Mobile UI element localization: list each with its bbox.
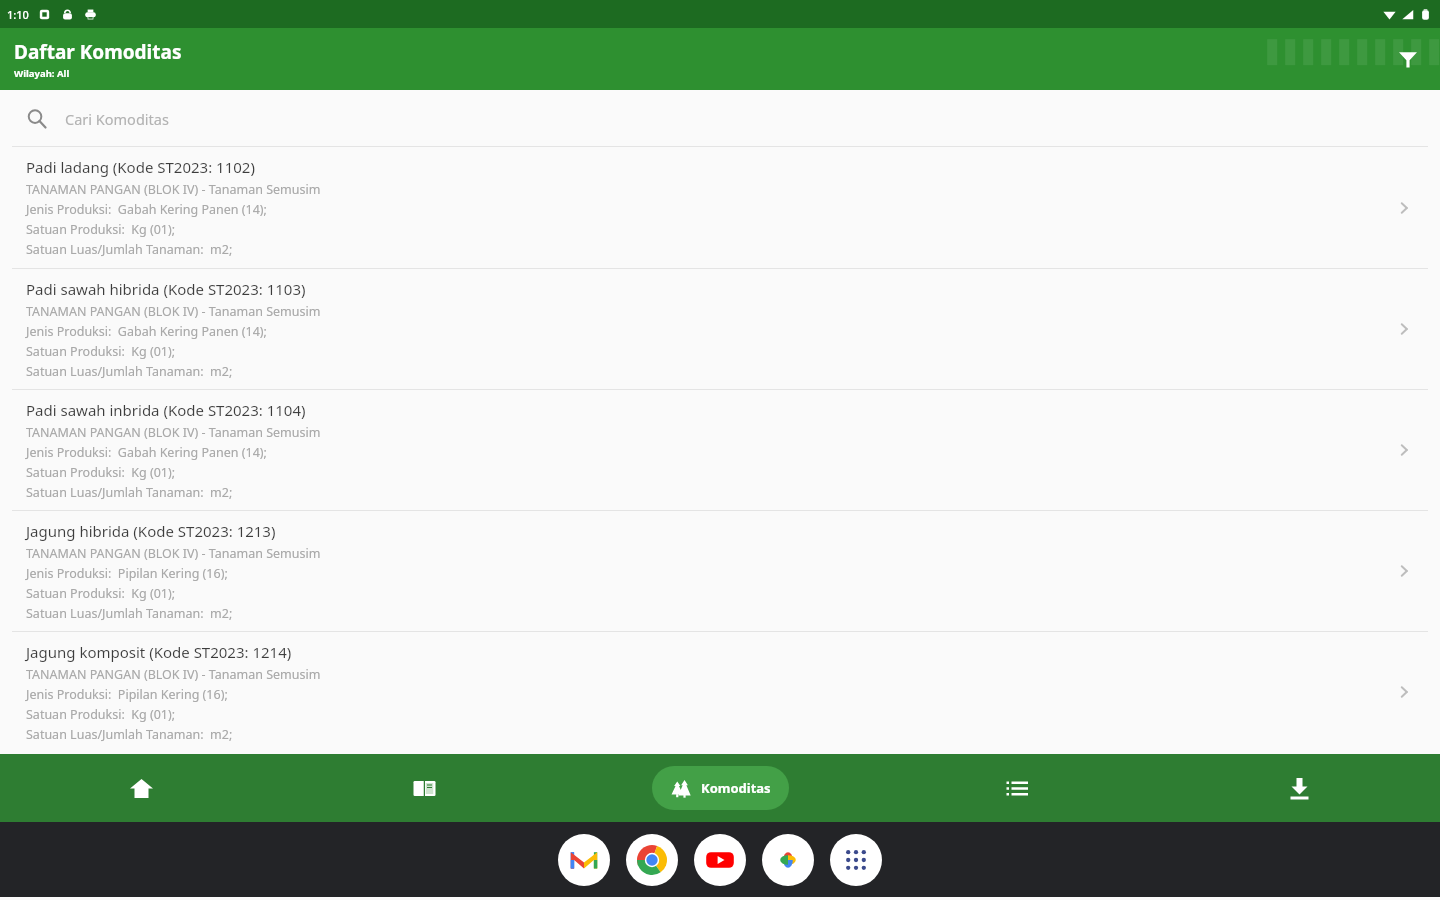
button[interactable]: Filter: [1386, 37, 1430, 81]
staticText: TANAMAN PANGAN (BLOK IV) - Tanaman Semus…: [26, 181, 321, 198]
staticText: Padi sawah inbrida (Kode ST2023: 1104): [26, 400, 306, 420]
button[interactable]: Jagung komposit (Kode ST2023: 1214): [0, 632, 1440, 752]
button[interactable]: Photos: [762, 834, 814, 886]
button[interactable]: YouTube: [694, 834, 746, 886]
staticText: Wilayah: All: [14, 67, 70, 80]
staticText: 1:10: [7, 7, 29, 22]
staticText: TANAMAN PANGAN (BLOK IV) - Tanaman Semus…: [26, 424, 321, 441]
staticText: Cari Komoditas: [65, 109, 169, 129]
button[interactable]: Jagung hibrida (Kode ST2023: 1213): [0, 511, 1440, 631]
staticText: Satuan Produksi: Kg (01);: [26, 706, 176, 723]
button[interactable]: Padi ladang (Kode ST2023: 1102): [0, 147, 1440, 268]
staticText: Jenis Produksi: Gabah Kering Panen (14);: [26, 323, 267, 340]
staticText: Jagung hibrida (Kode ST2023: 1213): [26, 521, 276, 541]
staticText: Satuan Produksi: Kg (01);: [26, 221, 176, 238]
button[interactable]: Cari Komoditas: [0, 90, 1440, 146]
button[interactable]: Buku: [283, 754, 565, 822]
staticText: Satuan Produksi: Kg (01);: [26, 343, 176, 360]
staticText: Jenis Produksi: Pipilan Kering (16);: [26, 686, 228, 703]
button[interactable]: Apps: [830, 834, 882, 886]
staticText: Daftar Komoditas: [14, 39, 182, 65]
staticText: Komoditas: [701, 779, 771, 797]
button[interactable]: Gmail: [558, 834, 610, 886]
staticText: Satuan Luas/Jumlah Tanaman: m2;: [26, 241, 233, 258]
staticText: TANAMAN PANGAN (BLOK IV) - Tanaman Semus…: [26, 666, 321, 683]
staticText: Satuan Produksi: Kg (01);: [26, 585, 176, 602]
staticText: Satuan Luas/Jumlah Tanaman: m2;: [26, 726, 233, 743]
button[interactable]: Daftar: [876, 754, 1158, 822]
button[interactable]: Unduh: [1158, 754, 1440, 822]
staticText: Padi ladang (Kode ST2023: 1102): [26, 157, 255, 177]
button[interactable]: Komoditas: [652, 766, 789, 810]
staticText: Jagung komposit (Kode ST2023: 1214): [26, 642, 292, 662]
staticText: Padi sawah hibrida (Kode ST2023: 1103): [26, 279, 306, 299]
staticText: Jenis Produksi: Gabah Kering Panen (14);: [26, 201, 267, 218]
staticText: Jenis Produksi: Pipilan Kering (16);: [26, 565, 228, 582]
button[interactable]: Padi sawah hibrida (Kode ST2023: 1103): [0, 269, 1440, 389]
button[interactable]: Chrome: [626, 834, 678, 886]
button[interactable]: Beranda: [0, 754, 283, 822]
staticText: Jenis Produksi: Gabah Kering Panen (14);: [26, 444, 267, 461]
staticText: TANAMAN PANGAN (BLOK IV) - Tanaman Semus…: [26, 303, 321, 320]
staticText: Satuan Luas/Jumlah Tanaman: m2;: [26, 605, 233, 622]
staticText: Satuan Luas/Jumlah Tanaman: m2;: [26, 484, 233, 501]
staticText: TANAMAN PANGAN (BLOK IV) - Tanaman Semus…: [26, 545, 321, 562]
staticText: Satuan Luas/Jumlah Tanaman: m2;: [26, 363, 233, 380]
staticText: Satuan Produksi: Kg (01);: [26, 464, 176, 481]
button[interactable]: Padi sawah inbrida (Kode ST2023: 1104): [0, 390, 1440, 510]
